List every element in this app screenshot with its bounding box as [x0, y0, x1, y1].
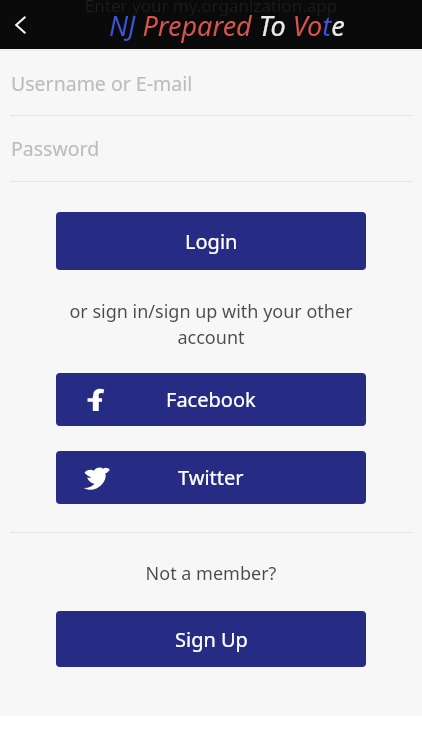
button[interactable]: Back — [0, 4, 42, 46]
staticText: NJ Prepared To Vote — [109, 7, 345, 44]
staticText: Facebook — [166, 386, 256, 413]
staticText: Login — [185, 228, 238, 255]
staticText: Enter your my.organization.app — [0, 0, 422, 17]
staticText: Username or E-mail — [11, 70, 193, 97]
staticText: Sign Up — [175, 626, 248, 653]
staticText: or sign in/sign up with your other accou… — [48, 299, 374, 350]
staticText: Not a member? — [0, 561, 422, 586]
button[interactable]: Twitter — [56, 451, 366, 504]
staticText: Password — [11, 135, 100, 162]
button[interactable]: Facebook — [56, 373, 366, 426]
button[interactable]: Username or E-mail — [0, 51, 422, 115]
staticText: Twitter — [178, 464, 244, 491]
button[interactable]: Login — [56, 212, 366, 270]
button[interactable]: Sign Up — [56, 611, 366, 667]
button[interactable]: Password — [0, 116, 422, 181]
